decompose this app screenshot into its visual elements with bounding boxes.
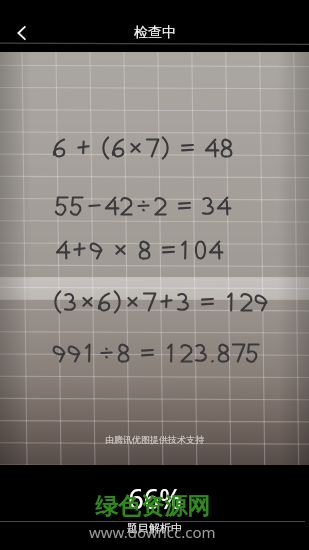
staticText: 由腾讯优图提供技术支持	[105, 434, 204, 445]
staticText: 绿色资源网	[95, 492, 210, 521]
staticText: www.downcc.com	[89, 522, 216, 542]
button[interactable]: Back	[0, 11, 44, 55]
staticText: 检查中	[134, 24, 176, 42]
staticText: 66%	[128, 480, 182, 517]
staticText: 题目解析中	[127, 521, 182, 535]
button[interactable]: 66%	[0, 465, 309, 550]
